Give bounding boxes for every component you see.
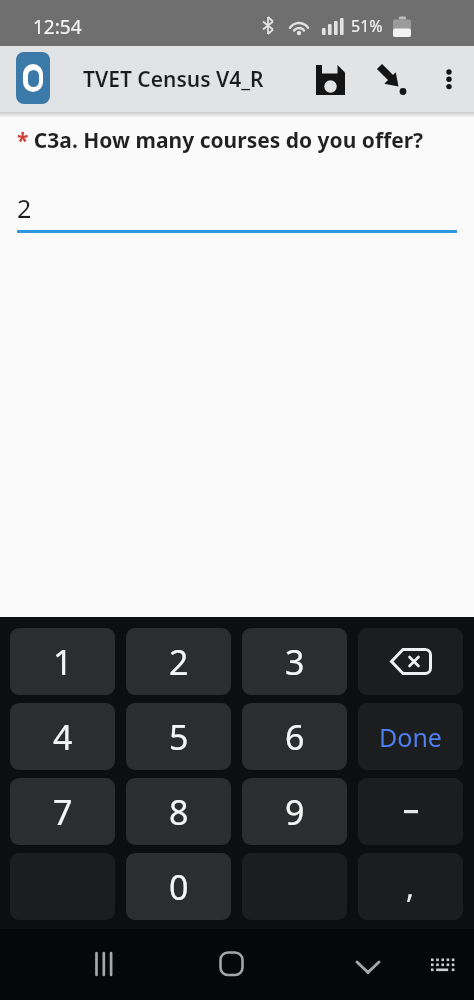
button[interactable]: 2 (126, 628, 231, 695)
staticText: 1 (53, 639, 73, 685)
button[interactable]: , (358, 853, 463, 920)
staticText: TVET Census V4_R (83, 65, 264, 94)
button[interactable] (369, 51, 413, 107)
button[interactable] (208, 941, 256, 989)
staticText: 12:54 (33, 14, 82, 40)
staticText: , (406, 866, 415, 907)
button[interactable] (358, 778, 463, 845)
button[interactable] (16, 52, 50, 104)
staticText: 2 (17, 191, 32, 225)
button[interactable]: Done (358, 703, 463, 770)
staticText: 2 (169, 639, 189, 685)
staticText: 51% (351, 15, 383, 37)
button[interactable]: 3 (242, 628, 347, 695)
button[interactable] (419, 941, 467, 989)
button[interactable] (80, 941, 128, 989)
button[interactable]: 4 (10, 703, 115, 770)
button[interactable]: 7 (10, 778, 115, 845)
button[interactable] (358, 628, 463, 695)
button[interactable]: 8 (126, 778, 231, 845)
button[interactable]: 0 (126, 853, 231, 920)
staticText: 6 (285, 714, 305, 760)
button[interactable]: 1 (10, 628, 115, 695)
button[interactable]: 9 (242, 778, 347, 845)
staticText: 9 (285, 789, 305, 835)
button[interactable]: 5 (126, 703, 231, 770)
staticText: Done (379, 720, 442, 754)
button[interactable] (427, 51, 471, 107)
button[interactable]: 2 (17, 191, 457, 233)
button[interactable] (344, 941, 392, 989)
staticText: * C3a. How many courses do you offer? (17, 126, 424, 155)
staticText: 4 (53, 714, 73, 760)
button[interactable]: 6 (242, 703, 347, 770)
staticText: 8 (169, 789, 189, 835)
staticText: 3 (285, 639, 305, 685)
staticText: 7 (53, 789, 73, 835)
button[interactable] (308, 51, 352, 107)
staticText: 5 (169, 714, 189, 760)
staticText: 0 (169, 864, 189, 910)
